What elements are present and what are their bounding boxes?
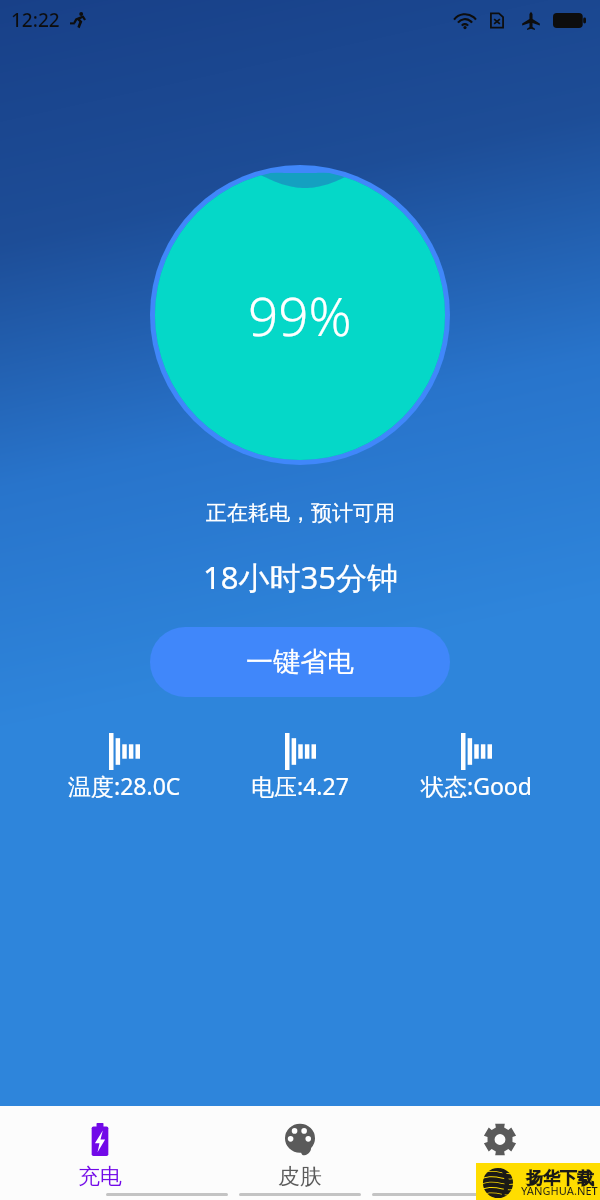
button[interactable]: gear [400,1106,600,1156]
staticText: 扬华下载 [526,1168,594,1189]
staticText: 18小时35分钟 [203,556,398,598]
button[interactable]: 一键省电 [150,627,450,697]
staticText: 99% [248,279,352,351]
staticText: YANGHUA.NET [521,1183,598,1198]
staticText: 一键省电 [246,645,354,679]
staticText: 温度:28.0C [68,770,181,801]
button[interactable]: palette [200,1106,400,1188]
staticText: 充电 [78,1163,122,1188]
staticText: 12:22 [11,7,60,33]
staticText: 皮肤 [278,1163,322,1188]
staticText: 状态:Good [421,770,532,801]
button[interactable]: charge [0,1106,200,1188]
staticText: 正在耗电，预计可用 [206,500,395,526]
staticText: 电压:4.27 [251,770,349,801]
